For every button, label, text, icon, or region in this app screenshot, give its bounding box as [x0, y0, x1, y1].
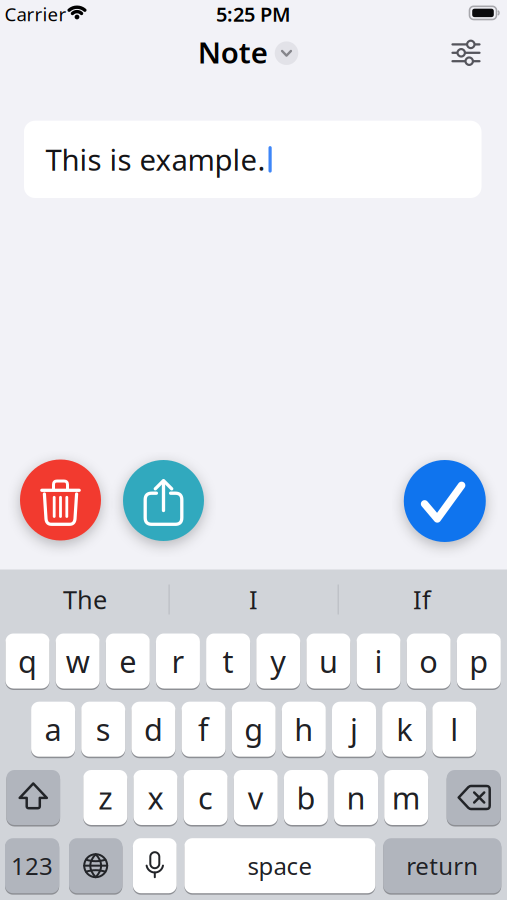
- staticText: If: [413, 583, 431, 616]
- staticText: u: [319, 641, 338, 681]
- button[interactable]: e: [106, 633, 150, 688]
- staticText: g: [244, 709, 263, 749]
- staticText: Carrier: [4, 2, 66, 26]
- staticText: v: [248, 777, 264, 818]
- button[interactable]: f: [181, 702, 225, 757]
- staticText: 5:25 PM: [216, 1, 291, 27]
- button[interactable]: z: [83, 770, 127, 825]
- staticText: b: [296, 777, 315, 818]
- button[interactable]: I: [173, 577, 333, 621]
- button[interactable]: m: [384, 770, 428, 825]
- button[interactable]: n: [334, 770, 378, 825]
- button[interactable]: i: [357, 633, 401, 688]
- staticText: s: [96, 709, 111, 749]
- button[interactable]: [447, 770, 501, 825]
- button[interactable]: [133, 838, 177, 893]
- button[interactable]: c: [184, 770, 228, 825]
- button[interactable]: [448, 35, 484, 71]
- staticText: I: [249, 583, 258, 616]
- button[interactable]: j: [332, 702, 376, 757]
- staticText: o: [419, 641, 438, 681]
- staticText: p: [469, 641, 488, 681]
- button[interactable]: Note: [198, 32, 298, 71]
- staticText: h: [294, 709, 313, 749]
- button[interactable]: b: [284, 770, 328, 825]
- staticText: i: [375, 641, 383, 681]
- button[interactable]: a: [31, 702, 75, 757]
- staticText: z: [98, 777, 112, 818]
- staticText: k: [396, 709, 412, 749]
- staticText: return: [406, 850, 478, 882]
- staticText: x: [147, 777, 163, 818]
- button[interactable]: The: [5, 577, 165, 621]
- button[interactable]: o: [407, 633, 451, 688]
- staticText: a: [45, 709, 62, 749]
- staticText: The: [63, 583, 107, 616]
- staticText: j: [350, 709, 358, 749]
- staticText: 123: [11, 850, 53, 882]
- staticText: y: [270, 641, 286, 681]
- button[interactable]: l: [432, 702, 476, 757]
- staticText: q: [18, 641, 37, 681]
- button[interactable]: s: [81, 702, 125, 757]
- button[interactable]: h: [282, 702, 326, 757]
- button[interactable]: space: [184, 838, 375, 893]
- button[interactable]: t: [206, 633, 250, 688]
- button[interactable]: x: [133, 770, 177, 825]
- button[interactable]: g: [232, 702, 276, 757]
- staticText: w: [66, 641, 90, 681]
- staticText: l: [450, 709, 458, 749]
- staticText: This is example.: [45, 140, 265, 179]
- button[interactable]: d: [131, 702, 175, 757]
- button[interactable]: 123: [5, 838, 59, 893]
- button[interactable]: w: [56, 633, 100, 688]
- button[interactable]: q: [5, 633, 49, 688]
- staticText: space: [247, 850, 312, 882]
- button[interactable]: p: [457, 633, 501, 688]
- button[interactable]: [69, 838, 122, 893]
- staticText: m: [392, 777, 421, 818]
- staticText: e: [119, 641, 136, 681]
- button[interactable]: [20, 459, 101, 540]
- staticText: c: [198, 777, 213, 818]
- staticText: Note: [198, 32, 268, 71]
- staticText: d: [144, 709, 163, 749]
- button[interactable]: return: [383, 838, 501, 893]
- button[interactable]: [6, 770, 60, 825]
- button[interactable]: v: [234, 770, 278, 825]
- button[interactable]: k: [382, 702, 426, 757]
- staticText: r: [171, 641, 184, 681]
- button[interactable]: u: [306, 633, 350, 688]
- button[interactable]: r: [156, 633, 200, 688]
- staticText: t: [223, 641, 234, 681]
- button[interactable]: If: [342, 577, 502, 621]
- button[interactable]: [404, 460, 486, 542]
- button[interactable]: y: [256, 633, 300, 688]
- button[interactable]: This is example.: [24, 121, 481, 198]
- button[interactable]: [123, 460, 204, 541]
- staticText: f: [198, 709, 209, 749]
- staticText: n: [347, 777, 366, 818]
